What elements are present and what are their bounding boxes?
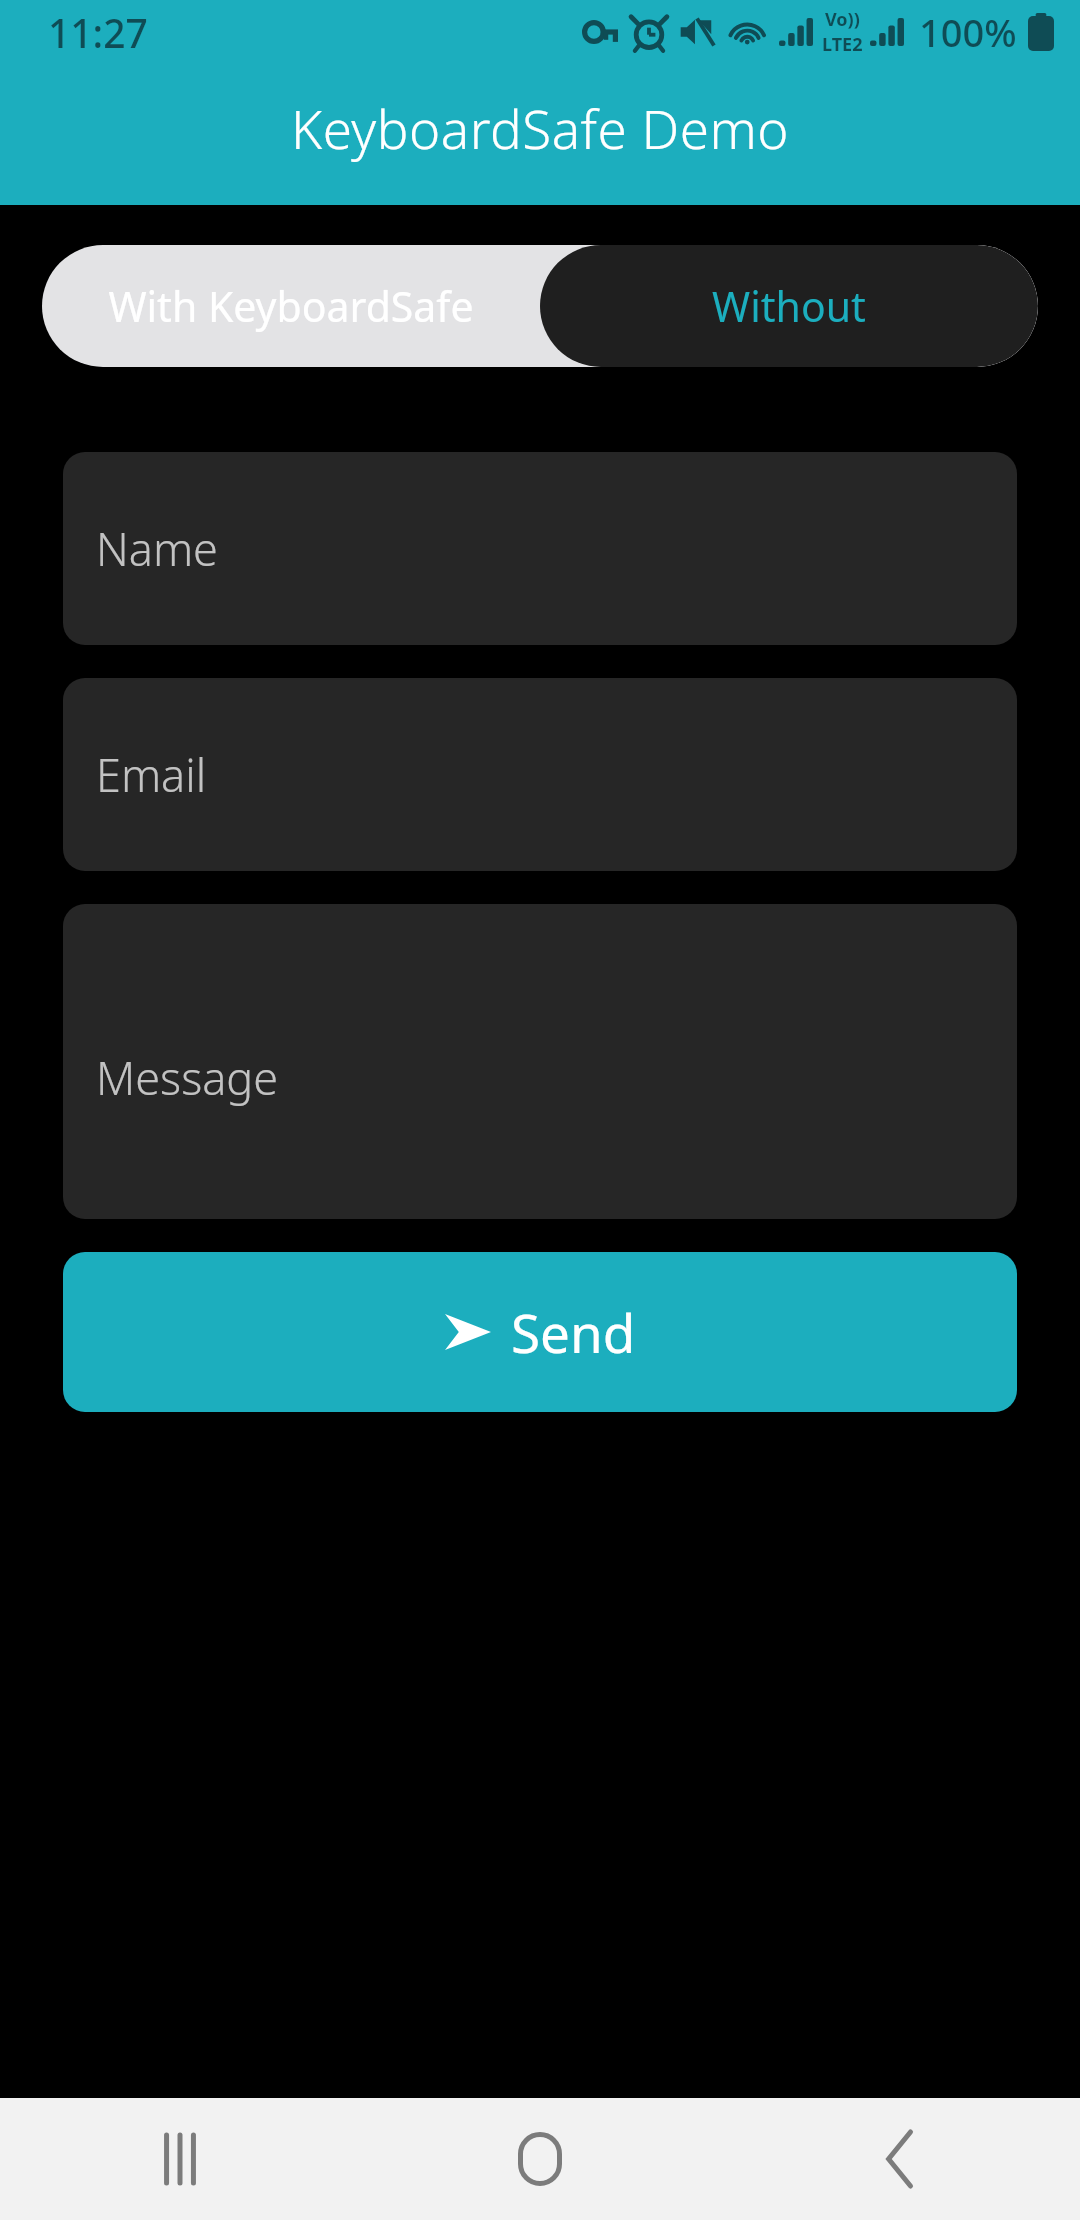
button[interactable]: Home xyxy=(360,2098,720,2220)
staticText: KeyboardSafe Demo xyxy=(291,92,790,164)
staticText: Without xyxy=(712,278,866,334)
staticText: With KeyboardSafe xyxy=(108,278,474,334)
staticText: Send xyxy=(511,1296,636,1368)
button[interactable]: Message xyxy=(63,904,1017,1219)
button[interactable]: Back xyxy=(720,2098,1080,2220)
staticText: Vo)) xyxy=(825,7,860,32)
button[interactable]: With KeyboardSafe xyxy=(42,245,540,367)
staticText: 11:27 xyxy=(48,6,148,59)
staticText: LTE2 xyxy=(822,32,863,57)
button[interactable]: Email xyxy=(63,678,1017,871)
staticText: Message xyxy=(96,1047,279,1108)
staticText: 100% xyxy=(919,6,1017,58)
button[interactable]: Send xyxy=(63,1252,1017,1412)
button[interactable]: Name xyxy=(63,452,1017,645)
button[interactable]: Recent apps xyxy=(0,2098,360,2220)
staticText: Email xyxy=(96,744,207,805)
button[interactable]: Without xyxy=(540,245,1038,367)
staticText: Name xyxy=(96,518,218,579)
